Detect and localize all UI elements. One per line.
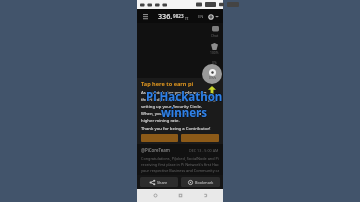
- staticText: Tap to: [207, 95, 217, 99]
- button[interactable]: Chat: [211, 26, 219, 37]
- staticText: receiving first place in Pi Network's fi…: [141, 162, 219, 167]
- staticText: higher mining rate.: [141, 118, 180, 124]
- staticText: Bookmark: [195, 180, 214, 185]
- button[interactable]: Back: [148, 189, 162, 202]
- staticText: When, you're so trustworthy a: [141, 111, 202, 117]
- button[interactable]: [181, 134, 219, 142]
- staticText: 9823: [173, 13, 184, 19]
- button[interactable]: Menu: [141, 12, 150, 21]
- staticText: winners: [161, 105, 208, 121]
- staticText: done: [211, 65, 219, 69]
- staticText: winners: [161, 106, 208, 122]
- staticText: your respective Business and Community c…: [141, 168, 219, 173]
- staticText: Congratulations, PiJoked, SocialNode and…: [141, 156, 219, 161]
- button[interactable]: Home: [173, 189, 187, 202]
- staticText: earn!: [208, 99, 216, 103]
- button[interactable]: Bookmark: [181, 177, 220, 187]
- staticText: Pi Hackathon: [145, 89, 222, 105]
- button[interactable]: Settings: [206, 12, 215, 21]
- staticText: Pi Hackathon: [146, 89, 223, 105]
- staticText: winners: [162, 105, 209, 121]
- staticText: Pi Hackathon: [146, 90, 223, 106]
- staticText: winners: [160, 105, 207, 121]
- staticText: Tap here to earn pi: [141, 80, 194, 88]
- staticText: Thank you for being a Contributor!: [141, 126, 211, 132]
- staticText: 0%: [212, 60, 217, 65]
- button[interactable]: Share: [140, 177, 178, 187]
- button[interactable]: [141, 134, 178, 142]
- staticText: Pi Hackathon: [146, 88, 223, 104]
- staticText: Chat: [211, 33, 219, 37]
- staticText: @PiCoreTeam: [141, 147, 170, 153]
- staticText: 0 h/s: [209, 76, 216, 80]
- button[interactable]: Security: [210, 43, 219, 54]
- staticText: 336.: [158, 11, 173, 21]
- button[interactable]: Tap to earn Pi: [202, 64, 222, 84]
- staticText: DEC 13 - 5:00 AM: [189, 148, 219, 153]
- staticText: As a contributor, you help secure: [141, 90, 207, 96]
- staticText: π: [185, 14, 189, 21]
- staticText: setting up your Security Circle.: [141, 104, 203, 110]
- staticText: 100%: [210, 50, 219, 54]
- staticText: the Pi ledger by helping to: [141, 97, 194, 103]
- button[interactable]: Recents: [198, 189, 212, 202]
- staticText: Pi Hackathon: [147, 89, 224, 105]
- staticText: winners: [161, 104, 208, 120]
- staticText: Share: [157, 180, 168, 185]
- staticText: EN: [198, 14, 204, 19]
